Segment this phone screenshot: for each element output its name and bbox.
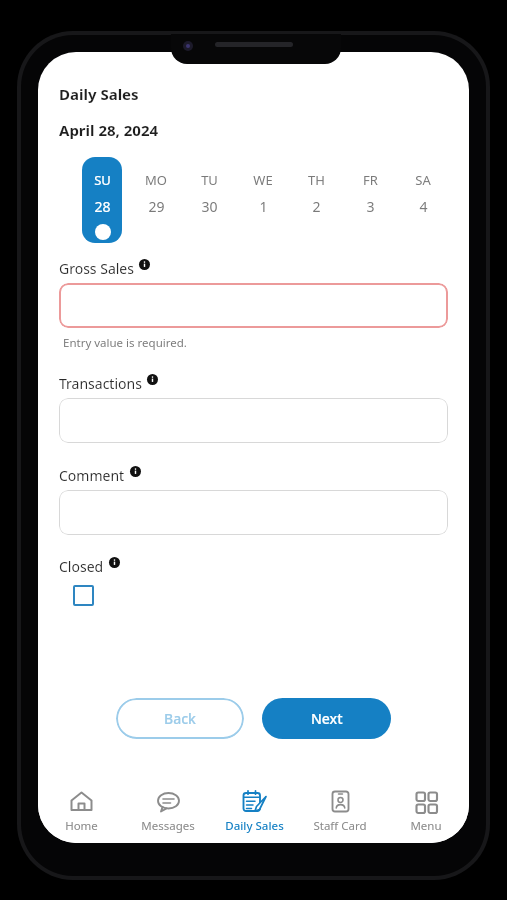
button[interactable]: TH <box>296 157 336 243</box>
staticText: Comment <box>59 466 125 485</box>
button[interactable]: Closed checkbox <box>72 584 95 607</box>
button[interactable] <box>59 490 448 535</box>
staticText: 30 <box>201 197 218 216</box>
button[interactable]: MO <box>136 157 176 243</box>
staticText: Home <box>65 818 98 834</box>
staticText: 2 <box>312 197 321 216</box>
staticText: Staff Card <box>313 818 367 834</box>
staticText: Gross Sales <box>59 259 134 278</box>
button[interactable]: Messages <box>125 779 211 843</box>
staticText: 1 <box>259 197 268 216</box>
staticText: MO <box>145 171 167 189</box>
button[interactable]: Home <box>38 779 125 843</box>
button[interactable]: Daily Sales <box>211 779 297 843</box>
button[interactable]: Transactions info <box>147 374 158 385</box>
staticText: Closed <box>59 557 104 576</box>
staticText: Daily Sales <box>59 84 139 104</box>
staticText: Entry value is required. <box>63 335 187 351</box>
staticText: WE <box>253 171 273 189</box>
staticText: 28 <box>94 197 111 216</box>
staticText: 29 <box>148 197 165 216</box>
staticText: SA <box>415 171 431 189</box>
staticText: FR <box>363 171 378 189</box>
staticText: 4 <box>419 197 428 216</box>
staticText: TH <box>308 171 325 189</box>
staticText: Daily Sales <box>225 818 284 834</box>
staticText: April 28, 2024 <box>59 120 159 140</box>
button[interactable]: Gross Sales info <box>139 259 150 270</box>
button[interactable]: SU <box>82 157 122 243</box>
button[interactable]: Next <box>262 698 391 739</box>
button[interactable]: Back <box>116 698 244 739</box>
button[interactable]: TU <box>189 157 229 243</box>
staticText: TU <box>201 171 218 189</box>
button[interactable]: Staff Card <box>297 779 383 843</box>
button[interactable]: Closed info <box>109 557 120 568</box>
button[interactable]: Comment info <box>130 466 141 477</box>
staticText: Messages <box>141 818 195 834</box>
staticText: Transactions <box>59 374 142 393</box>
staticText: Next <box>311 709 343 728</box>
button[interactable]: Menu <box>383 779 469 843</box>
button[interactable] <box>59 283 448 328</box>
staticText: 3 <box>366 197 375 216</box>
button[interactable]: SA <box>403 157 443 243</box>
button[interactable]: WE <box>243 157 283 243</box>
staticText: Back <box>164 709 196 728</box>
staticText: Menu <box>410 818 442 834</box>
button[interactable]: FR <box>350 157 390 243</box>
staticText: SU <box>94 171 111 189</box>
button[interactable] <box>59 398 448 443</box>
